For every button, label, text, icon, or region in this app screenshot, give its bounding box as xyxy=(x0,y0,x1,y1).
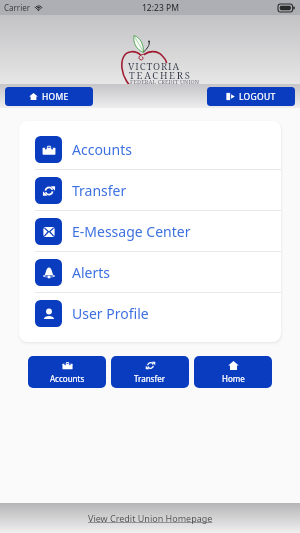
button[interactable]: LOGOUT xyxy=(207,87,295,106)
staticText: Transfer xyxy=(72,181,127,200)
button[interactable]: Accounts xyxy=(19,129,281,170)
staticText: Transfer xyxy=(134,373,166,384)
staticText: Carrier xyxy=(4,2,31,13)
staticText: Accounts xyxy=(72,140,132,159)
staticText: Accounts xyxy=(50,373,85,384)
button[interactable]: Alerts xyxy=(19,252,281,293)
button[interactable]: Transfer xyxy=(19,170,281,211)
button[interactable]: User Profile xyxy=(19,293,281,334)
staticText: User Profile xyxy=(72,304,149,323)
button[interactable]: HOME xyxy=(5,87,93,106)
staticText: FEDERAL CREDIT UNION xyxy=(130,78,200,86)
button[interactable]: Accounts xyxy=(28,356,106,388)
staticText: Home xyxy=(222,373,245,384)
staticText: E-Message Center xyxy=(72,222,191,241)
staticText: LOGOUT xyxy=(239,91,276,103)
button[interactable]: Transfer xyxy=(111,356,189,388)
button[interactable]: View Credit Union Homepage xyxy=(88,512,213,524)
staticText: 12:23 PM xyxy=(142,2,179,14)
staticText: VICTORIA xyxy=(128,60,181,73)
staticText: Alerts xyxy=(72,263,110,282)
staticText: HOME xyxy=(42,91,69,103)
button[interactable]: Home xyxy=(194,356,272,388)
staticText: TEACHERS xyxy=(129,69,192,82)
button[interactable]: E-Message Center xyxy=(19,211,281,252)
